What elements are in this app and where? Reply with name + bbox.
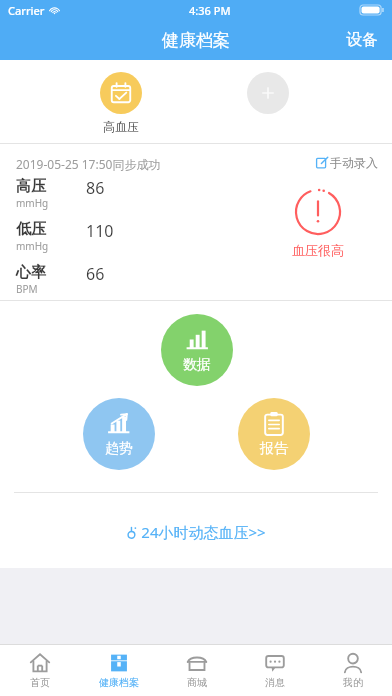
staticText: 血压很高 bbox=[292, 242, 344, 258]
staticText: Carrier bbox=[8, 3, 45, 18]
button[interactable]: 高血压 bbox=[100, 72, 142, 134]
staticText: 商城 bbox=[187, 676, 207, 689]
button[interactable]: 首页 bbox=[0, 645, 79, 696]
staticText: 高压 bbox=[16, 177, 46, 196]
staticText: 趋势 bbox=[105, 440, 133, 458]
button[interactable]: 我的 bbox=[314, 645, 392, 696]
staticText: 消息 bbox=[265, 676, 285, 689]
staticText: 报告 bbox=[260, 440, 288, 458]
staticText: 健康档案 bbox=[162, 30, 230, 51]
button[interactable]: Trend bbox=[83, 398, 155, 470]
staticText: 2019-05-25 17:50同步成功 bbox=[16, 156, 161, 172]
staticText: 设备 bbox=[346, 30, 378, 50]
button[interactable]: 消息 bbox=[236, 645, 314, 696]
staticText: mmHg bbox=[16, 239, 49, 253]
button[interactable]: 健康档案 bbox=[79, 645, 158, 696]
staticText: 4:36 PM bbox=[189, 3, 231, 18]
button[interactable]: Data bbox=[161, 314, 233, 386]
button[interactable]: 24小时动态血压>> bbox=[116, 518, 276, 546]
staticText: 66 bbox=[86, 263, 105, 285]
staticText: 高血压 bbox=[103, 119, 139, 134]
staticText: 24小时动态血压>> bbox=[141, 522, 266, 542]
staticText: 我的 bbox=[343, 676, 363, 689]
staticText: mmHg bbox=[16, 196, 49, 210]
button[interactable]: Add health record bbox=[247, 72, 289, 114]
staticText: 手动录入 bbox=[330, 155, 378, 170]
staticText: 首页 bbox=[30, 676, 50, 689]
button[interactable]: Report bbox=[238, 398, 310, 470]
staticText: 低压 bbox=[16, 220, 46, 239]
staticText: 110 bbox=[86, 220, 114, 242]
staticText: 健康档案 bbox=[99, 676, 139, 689]
button[interactable]: 设备 bbox=[332, 24, 392, 56]
staticText: 86 bbox=[86, 177, 105, 199]
staticText: 数据 bbox=[183, 356, 211, 374]
button[interactable]: 商城 bbox=[158, 645, 236, 696]
staticText: 心率 bbox=[16, 263, 46, 282]
staticText: BPM bbox=[16, 282, 38, 296]
button[interactable]: 手动录入 bbox=[312, 152, 382, 173]
